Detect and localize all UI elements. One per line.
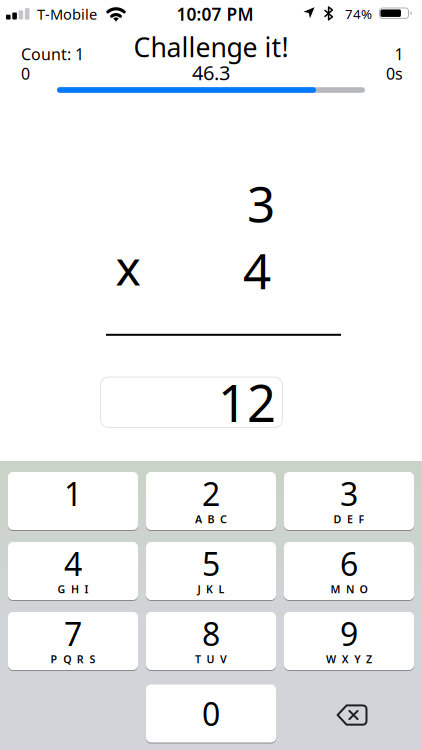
button[interactable]: 8 (146, 611, 276, 671)
button[interactable]: 3 (284, 471, 414, 531)
button[interactable]: 9 (284, 611, 414, 671)
staticText: x (115, 235, 140, 299)
staticText: 0 (21, 63, 30, 84)
staticText: 7 (64, 612, 82, 655)
staticText: 1 (64, 472, 82, 515)
button[interactable]: 4 (8, 541, 138, 601)
staticText: 46.3 (192, 59, 230, 86)
staticText: 9 (340, 612, 358, 655)
staticText: 6 (340, 542, 358, 585)
button[interactable]: 0 (146, 683, 276, 743)
staticText: T U V (195, 652, 227, 666)
staticText: 4 (64, 542, 82, 585)
button[interactable]: 6 (284, 541, 414, 601)
staticText: 74% (345, 5, 372, 23)
staticText: A B C (195, 512, 227, 526)
staticText: 12 (218, 369, 276, 436)
staticText: D E F (333, 512, 365, 526)
staticText: W X Y Z (326, 652, 372, 666)
staticText: Count: 1 (21, 43, 84, 65)
staticText: P Q R S (51, 652, 95, 666)
button[interactable]: Delete (284, 689, 414, 737)
button[interactable]: 2 (146, 471, 276, 531)
button[interactable]: 5 (146, 541, 276, 601)
staticText: 3 (247, 170, 275, 236)
staticText: M N O (330, 582, 368, 596)
staticText: 2 (202, 472, 220, 515)
staticText: 1 (394, 43, 403, 65)
staticText: Challenge it! (133, 29, 288, 65)
button[interactable]: 12 (100, 377, 283, 428)
staticText: G H I (57, 582, 89, 596)
staticText: 0s (386, 63, 403, 84)
staticText: 0 (202, 692, 220, 735)
staticText: J K L (197, 582, 225, 596)
staticText: 8 (202, 612, 220, 655)
button[interactable]: 7 (8, 611, 138, 671)
staticText: 3 (340, 472, 358, 515)
staticText: 5 (202, 542, 220, 585)
staticText: T-Mobile (37, 4, 97, 24)
button[interactable]: 1 (8, 471, 138, 531)
staticText: 10:07 PM (176, 2, 253, 25)
staticText: 4 (243, 237, 271, 303)
